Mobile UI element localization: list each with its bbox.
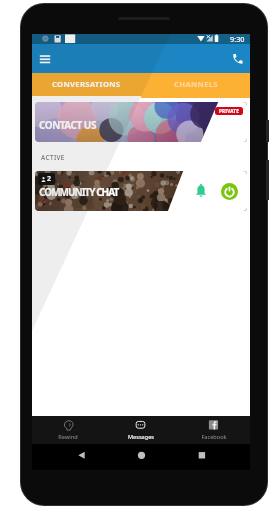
button[interactable]: Call xyxy=(229,51,245,67)
staticText: PRIVATE xyxy=(219,108,239,114)
button[interactable]: 2 xyxy=(35,171,247,211)
staticText: CHANNELS xyxy=(174,79,218,89)
button[interactable]: Leave chat xyxy=(221,183,238,200)
staticText: ACTIVE xyxy=(41,153,65,162)
button[interactable]: Open navigation menu xyxy=(36,50,54,68)
staticText: 2 xyxy=(47,174,52,184)
button[interactable]: Rewind xyxy=(32,416,104,444)
staticText: CONVERSATIONS xyxy=(52,79,121,89)
button[interactable]: CONVERSATIONS xyxy=(32,73,141,96)
staticText: 9:30 xyxy=(230,34,245,44)
button[interactable]: CONTACT US xyxy=(35,102,247,142)
staticText: Rewind xyxy=(58,433,78,441)
button[interactable]: CHANNELS xyxy=(141,73,250,96)
staticText: Messages xyxy=(128,433,154,441)
button[interactable]: Notifications xyxy=(193,183,209,199)
staticText: COMMUNITY CHAT xyxy=(39,185,119,199)
staticText: CONTACT US xyxy=(39,118,96,132)
button[interactable]: Messages xyxy=(104,416,177,444)
button[interactable]: Facebook xyxy=(177,416,250,444)
staticText: Facebook xyxy=(201,433,227,441)
